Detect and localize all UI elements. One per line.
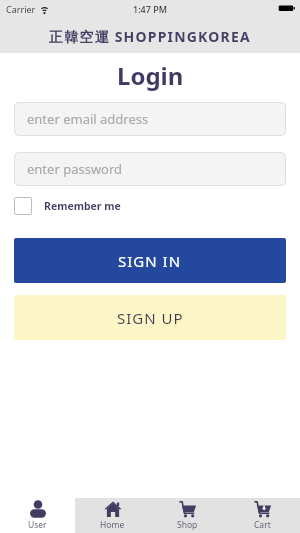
staticText: enter password [27, 160, 123, 178]
staticText: Shop [177, 519, 198, 531]
button[interactable]: enter password [14, 152, 286, 186]
staticText: enter email address [27, 110, 149, 128]
staticText: SIGN UP [117, 308, 184, 328]
button[interactable]: User [0, 498, 75, 533]
staticText: Login [117, 59, 184, 92]
button[interactable]: Home [75, 498, 150, 533]
button[interactable]: Cart [225, 498, 300, 533]
staticText: 正韓空運 SHOPPINGKOREA [49, 27, 251, 46]
button[interactable]: SIGN UP [14, 295, 286, 340]
staticText: Cart [254, 519, 271, 531]
staticText: Home [100, 519, 125, 531]
staticText: User [28, 519, 47, 531]
button[interactable]: SIGN IN [14, 238, 286, 283]
staticText: SIGN IN [118, 251, 182, 271]
button[interactable]: enter email address [14, 102, 286, 136]
staticText: Remember me [44, 199, 121, 213]
staticText: Carrier [6, 3, 36, 15]
button[interactable]: Remember me [14, 197, 121, 215]
button[interactable]: Shop [150, 498, 225, 533]
staticText: 1:47 PM [133, 3, 167, 15]
